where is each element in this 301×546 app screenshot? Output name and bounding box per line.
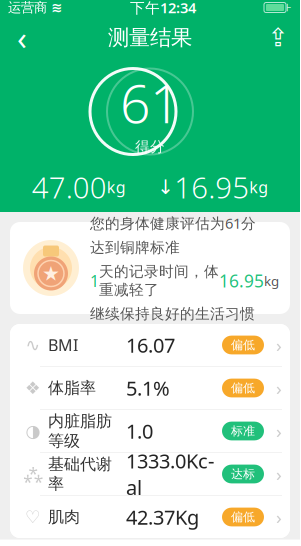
button[interactable]: ⁂ [10,453,290,496]
button[interactable]: ❖ [10,367,290,410]
staticText: ★ [42,262,60,285]
staticText: 5.1% [126,375,170,401]
staticText: 下午12:34 [130,0,196,17]
staticText: kg [264,272,279,290]
staticText: 达到铜牌标准 [90,239,180,257]
staticText: BMI [48,334,78,356]
staticText: › [276,419,282,443]
staticText: 继续保持良好的生活习惯 [90,305,255,323]
staticText: 16.95 [219,269,264,292]
staticText: 测量结果 [108,24,192,51]
staticText: ∿ [25,335,40,355]
staticText: ⇪ [267,23,288,52]
staticText: 1 [90,270,99,291]
staticText: 得分 [135,138,165,156]
staticText: 内脏脂肪等级 [48,411,112,451]
staticText: 您的身体健康评估为61分 [90,213,256,233]
button[interactable]: ♡ [10,496,290,538]
staticText: ⁂ [23,462,42,485]
staticText: 42.37Kg [126,504,199,530]
staticText: ‹ [17,16,27,59]
staticText: ↓ [157,176,174,198]
staticText: ⊦ [286,1,292,14]
staticText: 16.95 [174,167,249,206]
staticText: › [276,462,282,486]
staticText: 1.0 [126,418,153,444]
button[interactable]: ◑ [10,410,290,453]
staticText: 运营商 [8,0,47,16]
staticText: 肌肉 [48,507,80,527]
staticText: 天的记录时间，体重减轻了 [99,263,219,299]
staticText: 61 [120,67,180,138]
staticText: 47.00 [32,167,107,206]
staticText: 16.07 [126,332,175,358]
button[interactable]: Share [256,17,300,57]
staticText: 偏低 [231,381,255,395]
staticText: ◑ [25,421,40,441]
staticText: 达标 [231,467,255,481]
staticText: ♡ [25,507,41,527]
staticText: › [276,505,282,529]
staticText: 偏低 [231,338,255,352]
button[interactable]: Back [0,17,44,57]
staticText: › [276,376,282,400]
staticText: kg [107,176,126,198]
staticText: 基础代谢率 [48,454,112,494]
staticText: 1333.0Kcal [126,447,214,500]
staticText: 体脂率 [48,378,96,398]
button[interactable]: ∿ [10,324,290,367]
staticText: › [276,333,282,357]
staticText: 标准 [231,424,255,438]
staticText: ❖ [25,378,41,398]
staticText: kg [249,176,268,198]
staticText: 偏低 [231,510,255,524]
staticText: ≋ [51,0,62,15]
